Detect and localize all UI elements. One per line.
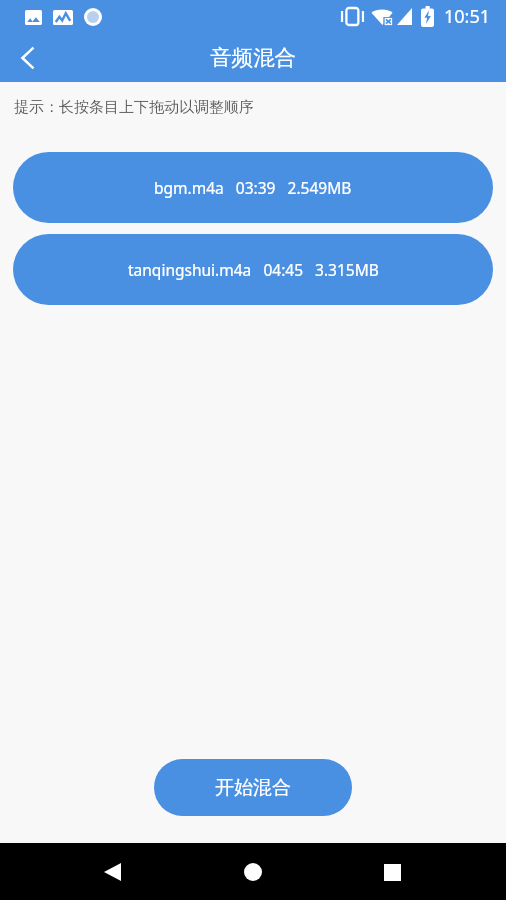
button[interactable]: Back [91,848,139,896]
button[interactable]: Back [1,33,53,82]
staticText: 开始混合 [215,776,291,800]
button[interactable]: bgm.m4a 03:39 2.549MB [13,152,493,223]
staticText: 音频混合 [210,44,296,71]
button[interactable]: tanqingshui.m4a 04:45 3.315MB [13,234,493,305]
staticText: bgm.m4a 03:39 2.549MB [154,177,352,198]
staticText: 提示：长按条目上下拖动以调整顺序 [14,98,254,117]
button[interactable]: Home [229,848,277,896]
staticText: 10:51 [444,4,491,29]
staticText: tanqingshui.m4a 04:45 3.315MB [128,259,379,280]
button[interactable]: 开始混合 [154,759,352,816]
button[interactable]: Recent apps [368,848,416,896]
